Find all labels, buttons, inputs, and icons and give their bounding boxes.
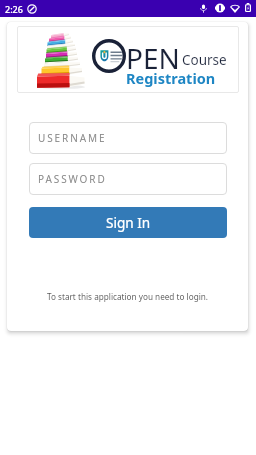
button[interactable]: Sign In	[29, 207, 227, 238]
staticText: 2:26	[5, 3, 23, 15]
staticText: USERNAME	[38, 131, 107, 145]
button[interactable]: PASSWORD	[29, 163, 227, 195]
staticText: PEN	[126, 39, 180, 77]
staticText: Course	[182, 51, 227, 69]
staticText: Sign In	[106, 213, 151, 232]
button[interactable]: USERNAME	[29, 122, 227, 154]
staticText: To start this application you need to lo…	[7, 291, 248, 302]
staticText: PASSWORD	[38, 172, 107, 186]
other: Do not disturb	[27, 4, 37, 14]
staticText: Registration	[126, 68, 216, 88]
